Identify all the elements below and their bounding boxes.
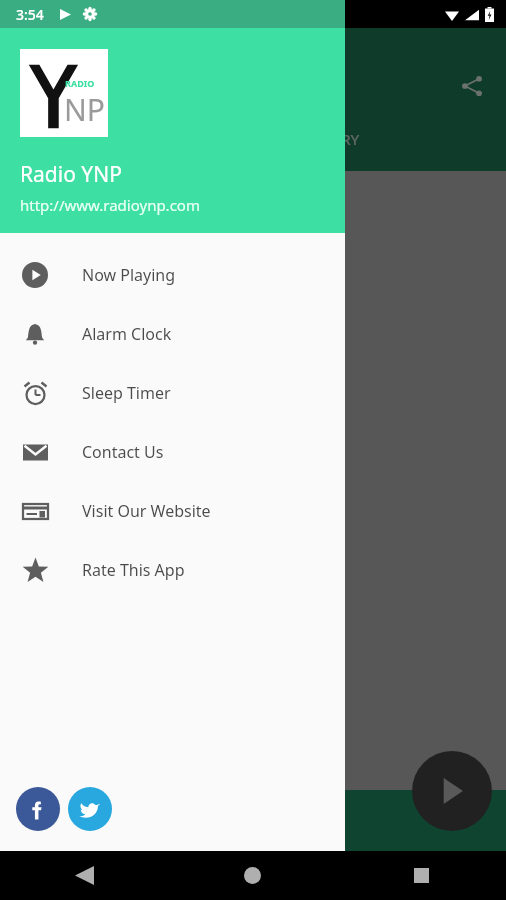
button[interactable]: Back [0, 851, 168, 900]
button[interactable]: Home [168, 851, 337, 900]
button[interactable]: Visit Our Website [0, 481, 345, 540]
staticText: Alarm Clock [82, 323, 172, 345]
staticText: RADIO [65, 77, 95, 89]
staticText: Rate This App [82, 559, 185, 581]
staticText: 3:54 [16, 5, 44, 24]
button[interactable]: Recents [337, 851, 506, 900]
button[interactable]: Play [412, 751, 492, 831]
staticText: Sleep Timer [82, 382, 171, 404]
button[interactable]: Now Playing [0, 245, 345, 304]
button[interactable]: Rate This App [0, 540, 345, 599]
button[interactable]: Contact Us [0, 422, 345, 481]
button[interactable]: Share [452, 66, 492, 106]
staticText: SONG HISTORY [250, 129, 360, 149]
staticText: Now Playing [82, 264, 176, 286]
button[interactable]: Twitter [68, 787, 112, 831]
staticText: Radio YNP [20, 160, 122, 189]
staticText: http://www.radioynp.com [20, 195, 200, 215]
button[interactable]: Alarm Clock [0, 304, 345, 363]
staticText: Contact Us [82, 441, 164, 463]
button[interactable]: Facebook [16, 787, 60, 831]
button[interactable]: Sleep Timer [0, 363, 345, 422]
staticText: NP [64, 89, 105, 130]
staticText: Visit Our Website [82, 500, 211, 522]
